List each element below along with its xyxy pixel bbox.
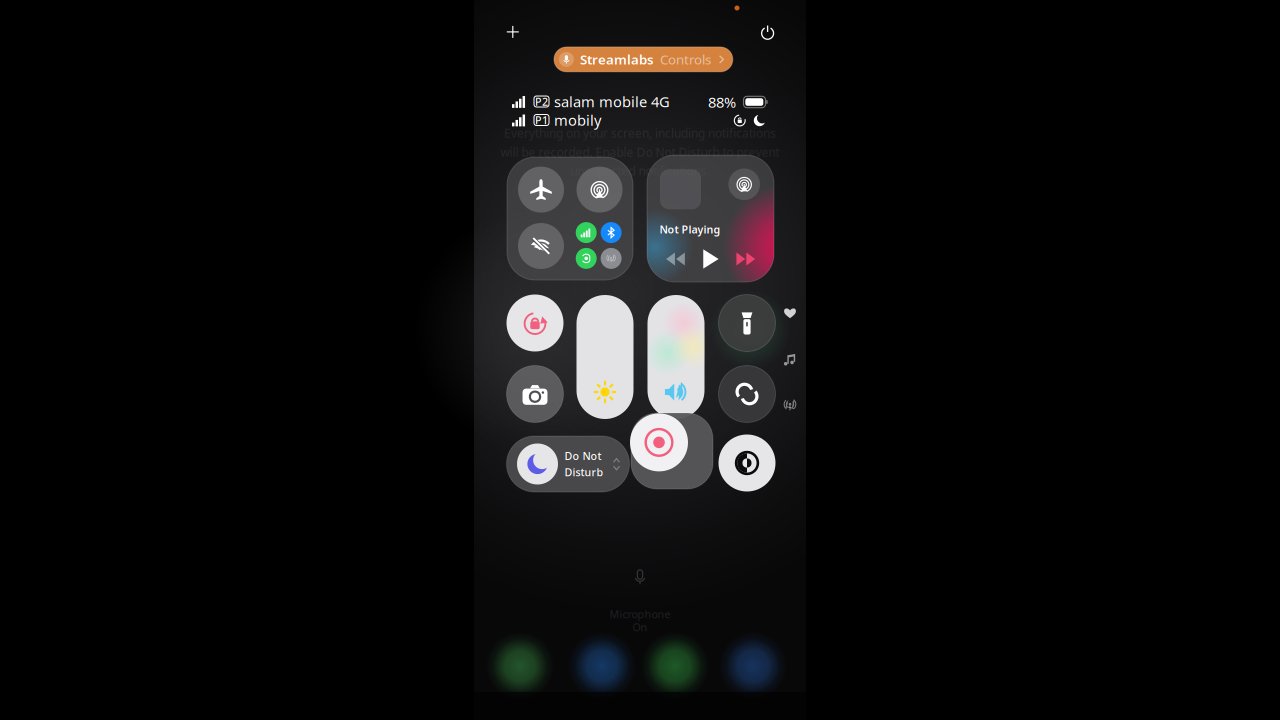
button[interactable]: Screen Broadcast: [778, 393, 802, 417]
button[interactable]: Rotation Lock: [506, 294, 563, 351]
button[interactable]: Airplane Mode: [518, 167, 564, 213]
staticText: Controls: [660, 50, 711, 68]
staticText: unexpected notifications.: [570, 163, 709, 179]
staticText: will be recorded. Enable Do Not Disturb …: [500, 144, 779, 160]
button[interactable]: Power off: [749, 13, 787, 51]
button[interactable]: Do Not Disturb: [506, 436, 629, 492]
staticText: 88%: [708, 92, 736, 112]
button[interactable]: Bluetooth: [601, 222, 622, 243]
button[interactable]: Dark Mode: [718, 434, 775, 491]
staticText: P1: [535, 113, 548, 127]
button[interactable]: Camera: [506, 365, 563, 422]
button[interactable]: AirPlay: [728, 168, 760, 200]
staticText: Everything on your screen, including not…: [504, 125, 776, 141]
button[interactable]: Flashlight: [718, 294, 775, 351]
button[interactable]: Health: [778, 301, 802, 325]
button[interactable]: Rewind: [658, 244, 692, 274]
staticText: salam mobile 4G: [554, 92, 670, 111]
button[interactable]: Wi-Fi: [518, 223, 564, 269]
button[interactable]: Shazam: [718, 365, 775, 422]
staticText: P2: [535, 94, 548, 109]
button[interactable]: Streamlabs Controls: [554, 47, 733, 72]
staticText: On: [632, 620, 647, 634]
staticText: Microphone: [609, 607, 670, 621]
button[interactable]: AirDrop: [576, 167, 622, 213]
button[interactable]: Satellite: [601, 248, 622, 269]
button[interactable]: Volume: [647, 295, 704, 419]
button[interactable]: Personal Hotspot: [576, 248, 597, 269]
staticText: Streamlabs: [580, 50, 654, 68]
button[interactable]: Cellular Data: [576, 222, 597, 243]
staticText: mobily: [554, 110, 601, 130]
button[interactable]: Play: [694, 244, 728, 274]
staticText: Not Playing: [659, 222, 720, 236]
button[interactable]: Brightness: [576, 295, 633, 419]
button[interactable]: Music Recognition: [778, 348, 802, 372]
staticText: Disturb: [564, 465, 603, 479]
staticText: Do Not: [564, 449, 601, 463]
button[interactable]: Fast-forward: [729, 244, 763, 274]
button[interactable]: Screen Recording: [630, 413, 688, 471]
button[interactable]: Add a control: [494, 13, 532, 51]
